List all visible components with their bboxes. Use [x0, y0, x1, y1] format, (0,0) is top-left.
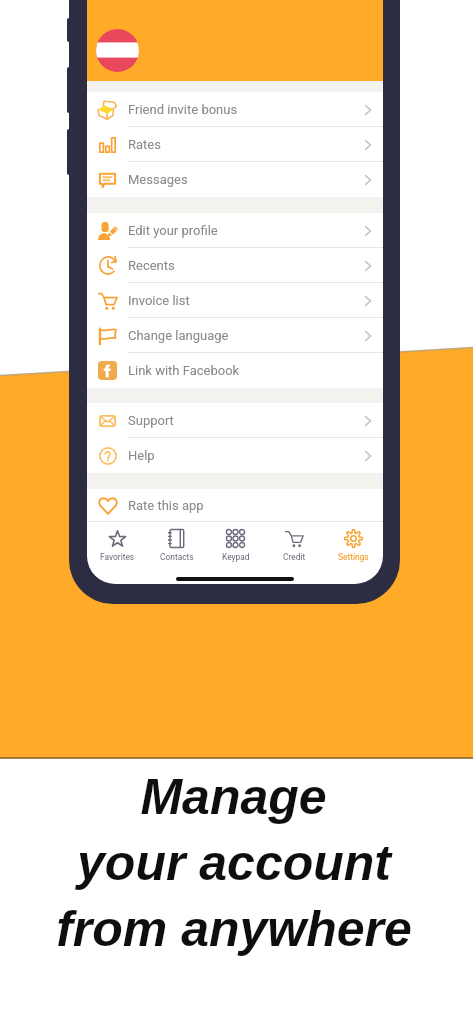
staticText: from anywhere [56, 901, 412, 957]
staticText: Favorites [100, 552, 135, 562]
staticText: Rate this app [128, 498, 204, 513]
button[interactable]: Edit your profile [87, 213, 383, 248]
staticText: your account [77, 835, 391, 891]
staticText: Edit your profile [128, 223, 218, 238]
button[interactable]: Rate this app [87, 489, 383, 522]
staticText: Credit [283, 552, 306, 562]
staticText: Rates [128, 137, 161, 152]
button[interactable]: Change language [87, 318, 383, 353]
button[interactable]: Contacts [147, 522, 206, 563]
button[interactable]: Help [87, 438, 383, 473]
staticText: Contacts [160, 552, 194, 562]
staticText: Friend invite bonus [128, 102, 238, 117]
button[interactable]: Favorites [87, 522, 147, 563]
button[interactable]: Support [87, 403, 383, 438]
button[interactable]: Recents [87, 248, 383, 283]
staticText: Recents [128, 258, 175, 273]
button[interactable]: Credit [265, 522, 324, 563]
staticText: Support [128, 413, 174, 428]
button[interactable]: Invoice list [87, 283, 383, 318]
button[interactable]: Rates [87, 127, 383, 162]
staticText: Manage [140, 769, 327, 825]
staticText: Settings [338, 552, 369, 562]
staticText: Keypad [222, 552, 250, 562]
staticText: Link with Facebook [128, 363, 240, 378]
button[interactable]: Friend invite bonus [87, 92, 383, 127]
staticText: Help [128, 448, 155, 463]
staticText: Invoice list [128, 293, 190, 308]
button[interactable]: Settings [324, 522, 383, 563]
button[interactable]: Link with Facebook [87, 353, 383, 388]
staticText: Messages [128, 172, 188, 187]
staticText: Change language [128, 328, 229, 343]
button[interactable]: Messages [87, 162, 383, 197]
button[interactable]: Keypad [206, 522, 265, 563]
